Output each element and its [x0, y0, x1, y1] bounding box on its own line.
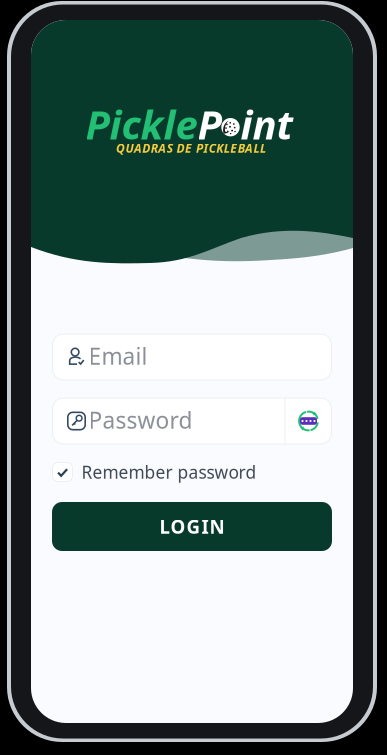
staticText: P — [197, 97, 221, 150]
staticText: Email — [88, 341, 147, 371]
staticText: int — [240, 97, 292, 150]
staticText: LOGIN — [159, 514, 224, 539]
button[interactable]: Remember password — [52, 461, 331, 483]
staticText: Remember password — [81, 460, 256, 483]
button[interactable]: LOGIN — [52, 502, 332, 551]
button[interactable]: Generate password — [285, 398, 331, 444]
staticText: Password — [88, 405, 192, 435]
staticText: QUADRAS DE PICKLEBALL — [116, 140, 266, 156]
staticText: Pickle — [85, 97, 197, 150]
